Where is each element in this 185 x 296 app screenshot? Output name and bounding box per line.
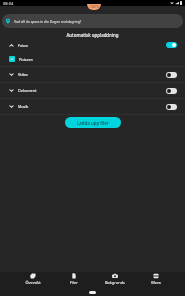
staticText: Ladda upp filer [77, 120, 109, 126]
staticText: 100 % [90, 5, 99, 9]
button[interactable]: Musik [0, 99, 185, 114]
button[interactable]: Mera [135, 273, 176, 285]
staticText: 08:04 [3, 1, 14, 6]
button[interactable]: Bakgrunds [94, 273, 135, 285]
staticText: Filer [70, 280, 78, 285]
button[interactable]: Off [166, 104, 177, 110]
staticText: Dokument [18, 88, 37, 93]
staticText: Mera [151, 280, 161, 285]
staticText: Översikt [25, 280, 41, 285]
button[interactable]: Off [166, 72, 177, 78]
staticText: Bakgrunds [105, 280, 125, 285]
staticText: Foton [18, 43, 28, 48]
button[interactable]: Pictures [0, 52, 185, 66]
staticText: Vad vill du spara in din Dagon molnlagri… [14, 19, 82, 23]
staticText: Musik [18, 104, 29, 109]
staticText: Pictures [19, 57, 33, 62]
button[interactable]: Foton [0, 38, 185, 52]
staticText: Video [18, 72, 28, 77]
button[interactable]: Dokument [0, 83, 185, 98]
button[interactable]: Vad vill du spara in din Dagon molnlagri… [2, 14, 183, 28]
button[interactable]: Översikt [13, 273, 53, 285]
button[interactable]: Video [0, 67, 185, 82]
button[interactable]: Off [166, 88, 177, 94]
button[interactable]: Filer [53, 273, 94, 285]
button[interactable]: On [166, 42, 177, 48]
button[interactable]: Ladda upp filer [65, 117, 121, 128]
staticText: Automatisk uppladdning [66, 32, 119, 38]
